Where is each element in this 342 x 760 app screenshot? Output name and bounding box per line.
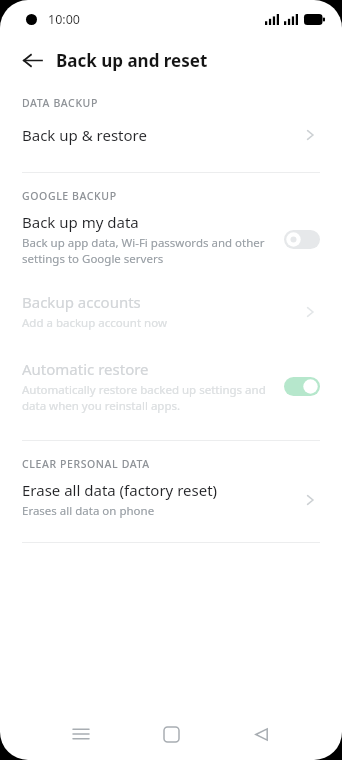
button[interactable]: Back [12,40,52,80]
button[interactable]: Back up my data [0,205,342,273]
button[interactable]: Erase all data (factory reset) [0,473,342,526]
button[interactable]: Off [284,230,320,249]
staticText: Erases all data on phone [22,503,155,519]
staticText: Backup accounts [22,292,141,312]
button[interactable]: Automatic restore [0,352,342,420]
button[interactable]: Back up & restore [0,112,342,158]
staticText: Automatic restore [22,359,149,379]
staticText: Automatically restore backed up settings… [22,382,266,413]
staticText: GOOGLE BACKUP [22,189,117,203]
button[interactable]: Recent apps [36,711,126,757]
staticText: Back up & restore [22,125,300,145]
staticText: Back up my data [22,212,139,232]
staticText: Back up and reset [56,49,208,72]
staticText: 10:00 [48,11,80,28]
staticText: Erase all data (factory reset) [22,480,218,500]
staticText: Back up app data, Wi-Fi passwords and ot… [22,235,265,266]
button[interactable]: Back [216,711,306,757]
button[interactable]: Backup accounts [0,285,342,338]
staticText: DATA BACKUP [22,96,98,110]
button[interactable]: Home [126,711,216,757]
staticText: Add a backup account now [22,315,167,331]
staticText: CLEAR PERSONAL DATA [22,457,150,471]
button[interactable]: On [284,377,320,396]
